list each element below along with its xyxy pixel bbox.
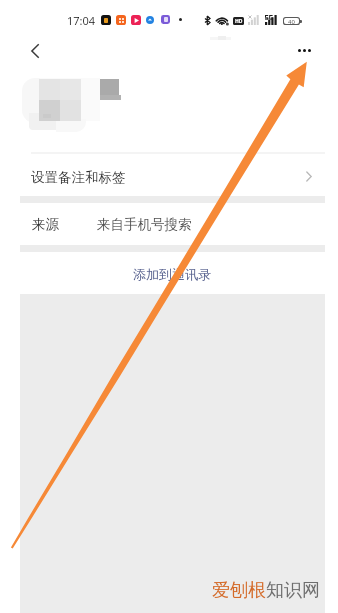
staticText: 17:04 <box>67 13 96 28</box>
staticText: 40 <box>288 18 295 24</box>
staticText: 爱刨根 <box>212 579 266 602</box>
staticText: 设置备注和标签 <box>31 169 126 186</box>
button[interactable]: 设置备注和标签 <box>0 157 338 197</box>
button[interactable]: 添加到通讯录 <box>0 253 338 294</box>
staticText: HD <box>235 18 243 25</box>
button[interactable]: Back <box>21 37 49 65</box>
staticText: 来源 <box>32 216 59 233</box>
button[interactable]: More options <box>290 36 319 65</box>
staticText: 添加到通讯录 <box>133 266 211 282</box>
staticText: 知识网 <box>266 579 320 602</box>
staticText: 来自手机号搜索 <box>97 216 192 233</box>
